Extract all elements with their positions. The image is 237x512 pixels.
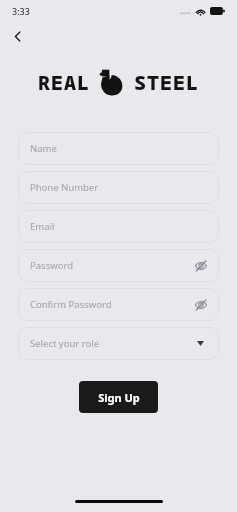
button[interactable]: Sign Up (79, 381, 158, 413)
button[interactable]: Toggle password visibility (192, 296, 209, 313)
button[interactable]: Phone Number (18, 171, 219, 204)
button[interactable]: Select your role (18, 327, 219, 360)
button[interactable]: Toggle password visibility (192, 257, 209, 274)
staticText: Select your role (30, 337, 99, 350)
staticText: Name (30, 142, 57, 155)
button[interactable]: Name (18, 132, 219, 165)
staticText: Email (30, 220, 55, 233)
staticText: Sign Up (98, 390, 140, 405)
staticText: 3:33 (12, 5, 30, 17)
button[interactable]: Password (18, 249, 219, 282)
staticText: REAL (38, 69, 90, 96)
staticText: Confirm Password (30, 298, 112, 311)
button[interactable]: Back (3, 22, 31, 50)
staticText: Phone Number (30, 181, 99, 194)
button[interactable]: Confirm Password (18, 288, 219, 321)
staticText: Password (30, 259, 73, 272)
button[interactable]: Email (18, 210, 219, 243)
button[interactable]: Select your role dropdown (192, 335, 209, 352)
staticText: STEEL (134, 69, 199, 96)
